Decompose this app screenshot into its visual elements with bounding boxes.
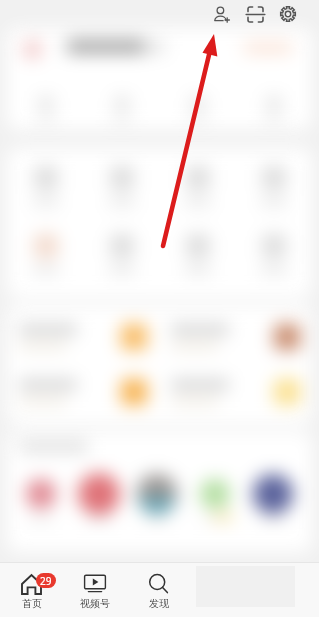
staticText: 视频号 [80,597,110,610]
button[interactable]: 首页 [0,563,63,617]
staticText: 发现 [149,597,169,610]
staticText: 首页 [22,597,42,610]
button[interactable]: Settings [274,0,302,28]
button[interactable]: Scan QR code [241,0,269,28]
button[interactable]: Add contact [208,0,236,28]
button[interactable]: 视频号 [63,563,127,617]
button[interactable]: Tab [255,563,319,617]
staticText: 29 [40,574,52,588]
button[interactable]: Tab [191,563,255,617]
button[interactable]: 发现 [127,563,191,617]
